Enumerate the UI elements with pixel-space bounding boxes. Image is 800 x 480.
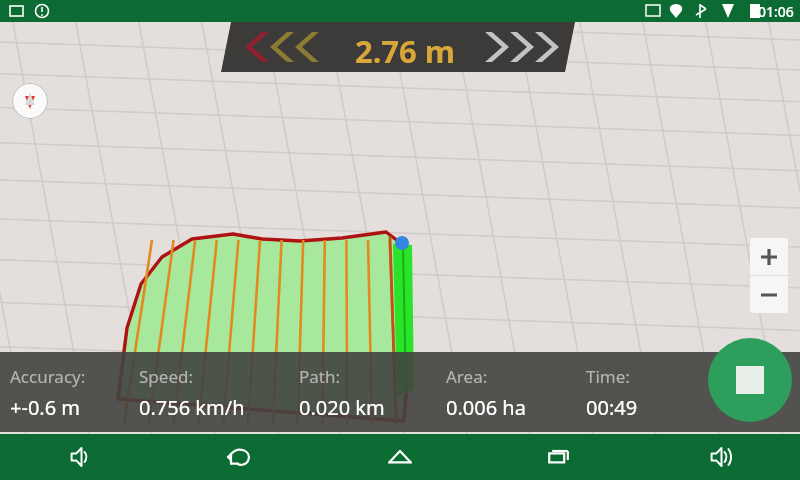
- button[interactable]: Volume up: [640, 434, 800, 480]
- button[interactable]: Compass: [12, 83, 48, 119]
- button[interactable]: Recent apps: [480, 434, 640, 480]
- staticText: Accuracy:: [10, 365, 86, 388]
- staticText: 00:49: [586, 394, 638, 421]
- staticText: Speed:: [139, 365, 193, 388]
- button[interactable]: Zoom out: [750, 276, 788, 313]
- staticText: 01:06: [758, 2, 794, 21]
- button[interactable]: Home: [320, 434, 480, 480]
- staticText: Path:: [299, 365, 341, 388]
- staticText: Area:: [446, 365, 488, 388]
- button[interactable]: Back: [160, 434, 320, 480]
- button[interactable]: Volume down: [0, 434, 160, 480]
- staticText: 0.020 km: [299, 394, 385, 421]
- staticText: 0.006 ha: [446, 394, 526, 421]
- staticText: 2.76 m: [330, 30, 480, 72]
- staticText: +-0.6 m: [10, 394, 81, 421]
- button[interactable]: Zoom in: [750, 238, 788, 275]
- staticText: 0.756 km/h: [139, 394, 245, 421]
- staticText: Time:: [586, 365, 630, 388]
- button[interactable]: Stop recording: [708, 338, 792, 422]
